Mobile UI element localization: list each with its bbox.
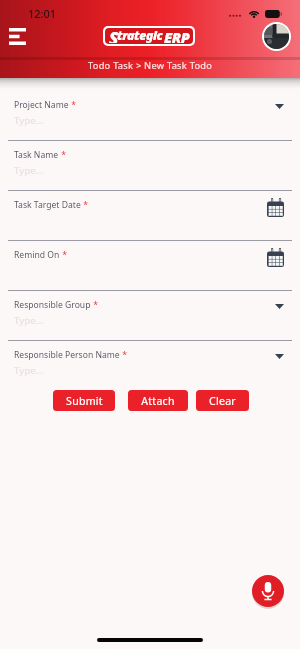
- button[interactable]: Voice input: [252, 575, 284, 607]
- staticText: Responsible Group: [14, 299, 91, 311]
- staticText: Task Name: [14, 149, 59, 161]
- staticText: Responsible Person Name: [14, 349, 120, 361]
- staticText: Submit: [66, 394, 103, 408]
- staticText: 12:01: [28, 6, 57, 21]
- button[interactable]: Project Name: [0, 90, 300, 140]
- staticText: Type...: [14, 314, 44, 327]
- staticText: Attach: [141, 394, 175, 408]
- staticText: *: [60, 249, 67, 261]
- button[interactable]: Task Name: [0, 140, 300, 190]
- staticText: *: [91, 299, 98, 311]
- staticText: ERP: [164, 28, 190, 43]
- staticText: *: [120, 349, 127, 361]
- staticText: Remind On: [14, 249, 60, 261]
- button[interactable]: Profile: [262, 22, 291, 51]
- staticText: *: [59, 149, 66, 161]
- staticText: S: [109, 28, 118, 43]
- button[interactable]: Attach: [128, 390, 188, 411]
- staticText: Type...: [14, 364, 44, 377]
- button[interactable]: Remind On: [0, 240, 300, 290]
- button[interactable]: Task Target Date: [0, 190, 300, 240]
- button[interactable]: Responsible Person Name: [0, 340, 300, 390]
- staticText: Clear: [209, 394, 236, 408]
- staticText: Todo Task > New Task Todo: [88, 59, 213, 72]
- staticText: Task Target Date: [14, 199, 81, 211]
- staticText: Project Name: [14, 99, 69, 111]
- button[interactable]: Menu: [4, 23, 31, 50]
- staticText: Type...: [14, 164, 44, 177]
- staticText: Type...: [14, 114, 44, 127]
- staticText: *: [69, 99, 76, 111]
- button[interactable]: StrategicERP: [105, 28, 193, 44]
- button[interactable]: Clear: [196, 390, 249, 411]
- staticText: trategic: [117, 28, 163, 43]
- button[interactable]: Submit: [53, 390, 115, 411]
- staticText: *: [81, 199, 88, 211]
- button[interactable]: Responsible Group: [0, 290, 300, 340]
